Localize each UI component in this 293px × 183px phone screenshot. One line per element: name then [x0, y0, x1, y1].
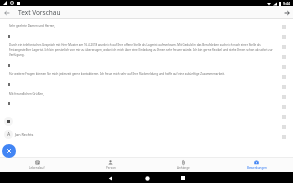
staticText: Text Vorschau — [18, 8, 61, 17]
staticText: Mit freundlichen Grüßen, — [9, 92, 44, 96]
button[interactable]: Paragraph — [7, 82, 11, 86]
button[interactable]: Signature — [4, 117, 13, 126]
button[interactable]: Recents — [178, 173, 188, 183]
button[interactable]: Paragraph — [7, 63, 11, 67]
button[interactable]: Bewerbungen — [220, 157, 293, 172]
button[interactable]: Für weitere Fragen können Sie mich jeder… — [9, 72, 280, 76]
staticText: Bewerbungen — [247, 166, 267, 170]
button[interactable]: Sehr geehrte Damen und Herren, — [9, 24, 280, 28]
staticText: Jan Rechts — [15, 132, 34, 137]
button[interactable]: Paragraph — [7, 101, 11, 105]
button[interactable]: Person — [74, 157, 147, 172]
staticText: Person — [106, 166, 116, 170]
button[interactable]: Home — [142, 173, 152, 183]
button[interactable]: A — [4, 130, 34, 139]
button[interactable]: Next — [280, 6, 293, 19]
staticText: Anhänge — [177, 166, 190, 170]
button[interactable]: Anhänge — [147, 157, 220, 172]
button[interactable]: Back — [105, 173, 115, 183]
staticText: Lebenslauf — [29, 166, 45, 170]
staticText: Durch ein telefonisches Gespräch mit Her… — [9, 43, 280, 57]
button[interactable]: Lebenslauf — [0, 157, 74, 172]
button[interactable]: Durch ein telefonisches Gespräch mit Her… — [9, 43, 280, 57]
staticText: Für weitere Fragen können Sie mich jeder… — [9, 72, 225, 76]
button[interactable]: Mit freundlichen Grüßen, — [9, 92, 280, 96]
button[interactable]: Paragraph — [7, 34, 11, 38]
staticText: A — [7, 131, 11, 138]
staticText: Sehr geehrte Damen und Herren, — [9, 24, 56, 28]
button[interactable]: Back — [0, 6, 13, 19]
staticText: 9:44 — [283, 1, 291, 6]
button[interactable]: Close — [2, 144, 16, 158]
